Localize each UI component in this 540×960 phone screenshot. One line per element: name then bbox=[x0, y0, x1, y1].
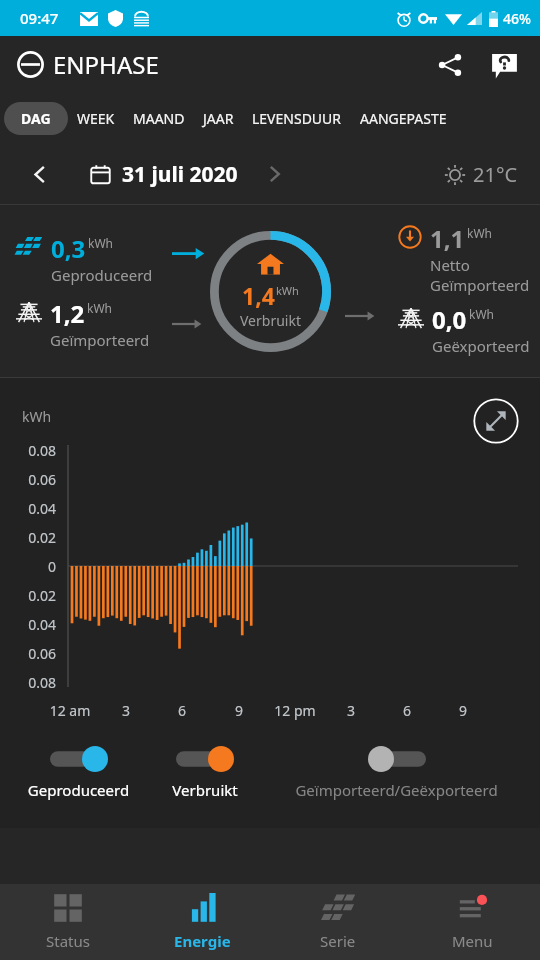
staticText: kWh bbox=[22, 407, 52, 426]
button[interactable]: Share bbox=[428, 43, 472, 87]
button[interactable]: Next day bbox=[258, 158, 290, 190]
button[interactable]: JAAR bbox=[194, 102, 243, 135]
button[interactable]: LEVENSDUUR bbox=[243, 102, 351, 135]
staticText: 1,2 bbox=[50, 297, 85, 330]
staticText: Verbruikt bbox=[147, 780, 263, 800]
button[interactable]: Serie bbox=[270, 884, 405, 960]
staticText: 31 juli 2020 bbox=[122, 160, 238, 189]
staticText: Geïmporteerd bbox=[430, 275, 530, 295]
button[interactable]: DAG bbox=[4, 102, 68, 135]
staticText: Verbruikt bbox=[240, 311, 301, 330]
button[interactable]: Menu bbox=[405, 884, 540, 960]
button[interactable]: Verbruikt bbox=[147, 746, 263, 800]
staticText: 1,1 bbox=[430, 222, 465, 255]
staticText: Geïmporteerd/Geëxporteerd bbox=[263, 780, 530, 800]
staticText: Geproduceerd bbox=[10, 780, 147, 800]
staticText: 0.04 bbox=[12, 499, 56, 518]
staticText: 12 am bbox=[48, 701, 92, 720]
staticText: kWh bbox=[276, 283, 299, 298]
staticText: 21°C bbox=[473, 161, 518, 188]
staticText: Status bbox=[46, 931, 90, 951]
staticText: 0.08 bbox=[12, 441, 56, 460]
staticText: 3 bbox=[329, 701, 373, 720]
staticText: WEEK bbox=[77, 109, 115, 128]
button[interactable]: Geproduceerd bbox=[10, 746, 147, 800]
staticText: Geëxporteerd bbox=[432, 336, 530, 356]
staticText: 0.08 bbox=[12, 673, 56, 692]
staticText: Serie bbox=[320, 931, 356, 951]
button[interactable]: Help bbox=[482, 43, 526, 87]
staticText: 1,4 bbox=[242, 280, 275, 311]
staticText: DAG bbox=[21, 109, 51, 128]
staticText: ENPHASE bbox=[53, 48, 159, 81]
staticText: AANGEPASTE bbox=[360, 109, 447, 128]
staticText: 46% bbox=[503, 9, 531, 28]
staticText: 0.06 bbox=[12, 470, 56, 489]
button[interactable]: Expand chart bbox=[473, 398, 519, 444]
staticText: MAAND bbox=[133, 109, 185, 128]
staticText: Geproduceerd bbox=[51, 265, 153, 285]
staticText: 9 bbox=[217, 701, 261, 720]
staticText: 0.02 bbox=[12, 586, 56, 605]
staticText: kWh bbox=[87, 300, 112, 316]
button[interactable]: Geïmporteerd/Geëxporteerd bbox=[263, 746, 530, 800]
button[interactable]: Energie bbox=[135, 884, 270, 960]
staticText: 9 bbox=[441, 701, 485, 720]
button[interactable]: Previous day bbox=[22, 156, 58, 192]
staticText: LEVENSDUUR bbox=[252, 109, 342, 128]
staticText: 6 bbox=[385, 701, 429, 720]
staticText: 12 pm bbox=[273, 701, 317, 720]
staticText: kWh bbox=[88, 235, 113, 251]
staticText: 0.02 bbox=[12, 528, 56, 547]
staticText: 0,0 bbox=[432, 303, 467, 336]
staticText: 0.04 bbox=[12, 615, 56, 634]
button[interactable]: Status bbox=[0, 884, 135, 960]
staticText: Geïmporteerd bbox=[50, 330, 150, 350]
button[interactable]: WEEK bbox=[68, 102, 124, 135]
staticText: 6 bbox=[160, 701, 204, 720]
staticText: kWh bbox=[469, 306, 494, 322]
staticText: 09:47 bbox=[20, 8, 59, 28]
button[interactable]: AANGEPASTE bbox=[351, 102, 456, 135]
button[interactable]: MAAND bbox=[124, 102, 194, 135]
staticText: JAAR bbox=[203, 109, 234, 128]
staticText: kWh bbox=[467, 225, 492, 241]
staticText: 0,3 bbox=[51, 232, 86, 265]
staticText: Energie bbox=[174, 931, 231, 951]
staticText: 3 bbox=[104, 701, 148, 720]
staticText: 0.06 bbox=[12, 644, 56, 663]
staticText: Menu bbox=[452, 931, 493, 951]
staticText: Netto bbox=[430, 255, 470, 275]
staticText: 0 bbox=[12, 557, 56, 576]
